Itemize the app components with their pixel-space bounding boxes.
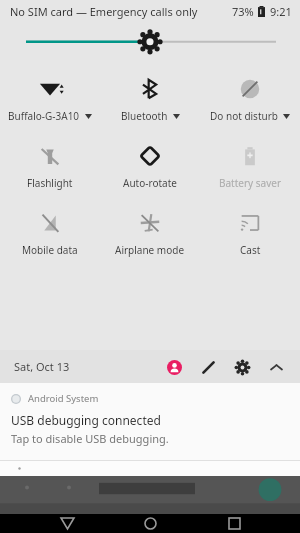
staticText: Flashlight: [27, 176, 73, 190]
button[interactable]: Battery saver: [200, 145, 300, 190]
button[interactable]: Settings: [231, 356, 253, 378]
staticText: No SIM card — Emergency calls only: [10, 4, 198, 19]
staticText: Do not disturb: [210, 109, 278, 123]
staticText: Android System: [28, 392, 99, 405]
staticText: Auto-rotate: [123, 176, 177, 190]
button[interactable]: Cast: [200, 212, 300, 257]
staticText: 73%: [232, 4, 254, 19]
staticText: Bluetooth: [121, 109, 168, 123]
staticText: Cast: [240, 243, 261, 257]
staticText: Buffalo-G-3A10: [8, 109, 80, 123]
staticText: Battery saver: [219, 176, 282, 190]
button[interactable]: Flashlight: [0, 145, 100, 190]
button[interactable]: Edit: [197, 356, 219, 378]
button[interactable]: Mobile data: [0, 212, 100, 257]
button[interactable]: Airplane mode: [100, 212, 200, 257]
button[interactable]: User: [163, 356, 185, 378]
button[interactable]: Android System: [0, 383, 300, 460]
button[interactable]: Auto-rotate: [100, 145, 200, 190]
staticText: Airplane mode: [115, 243, 185, 257]
button[interactable]: Buffalo-G-3A10: [0, 78, 100, 123]
button[interactable]: Do not disturb: [200, 78, 300, 123]
staticText: USB debugging connected: [11, 412, 161, 428]
staticText: Sat, Oct 13: [14, 359, 70, 374]
button[interactable]: Collapse: [265, 356, 287, 378]
button[interactable]: Back: [50, 514, 84, 533]
button[interactable]: Home: [133, 514, 167, 533]
button[interactable]: Brightness: [0, 22, 300, 60]
staticText: 9:21: [270, 4, 292, 19]
button[interactable]: Bluetooth: [100, 78, 200, 123]
button[interactable]: Recents: [217, 514, 251, 533]
staticText: Tap to disable USB debugging.: [11, 431, 169, 446]
staticText: Mobile data: [22, 243, 78, 257]
